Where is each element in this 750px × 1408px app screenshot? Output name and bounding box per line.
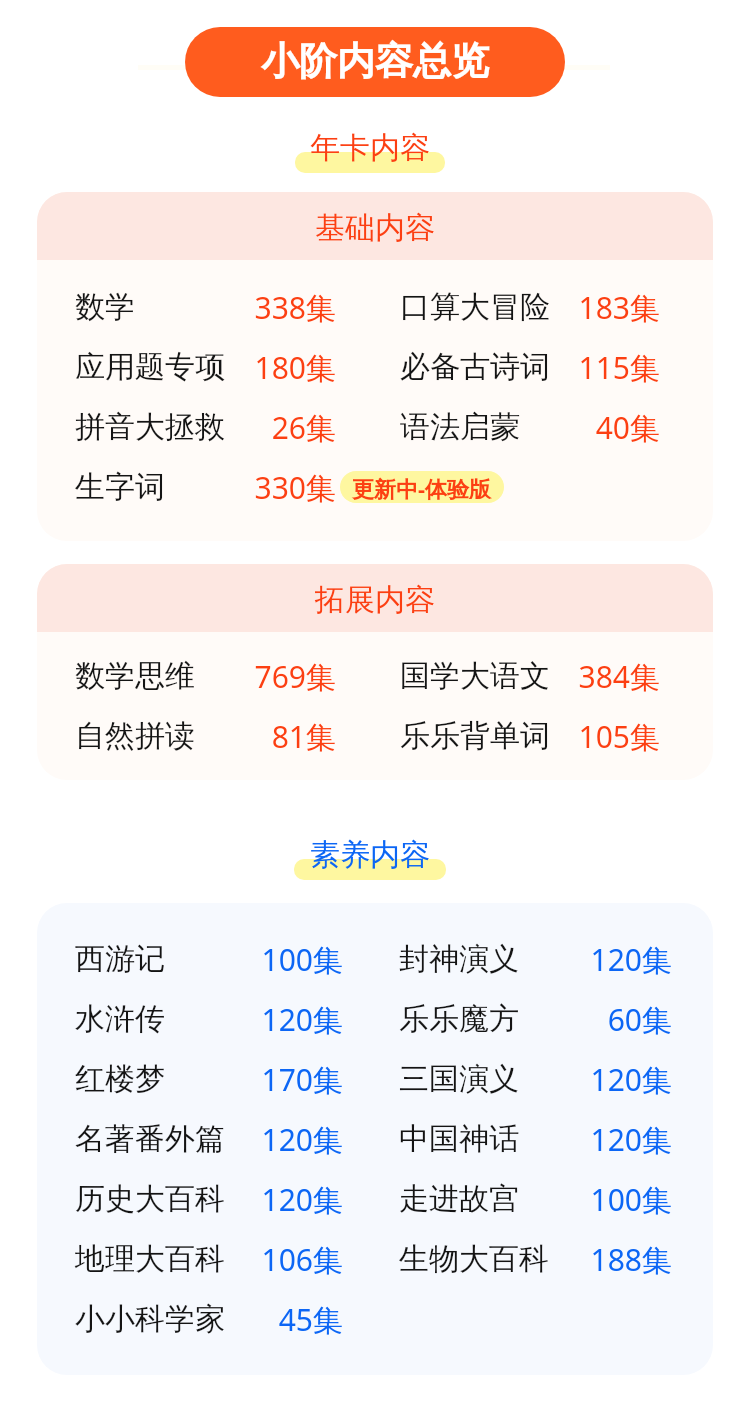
staticText: 水浒传 (75, 1000, 253, 1038)
staticText: 自然拼读 (75, 717, 246, 755)
button[interactable]: 国学大语文 (400, 646, 660, 706)
button[interactable]: 乐乐背单词 (400, 706, 660, 766)
staticText: 红楼梦 (75, 1060, 253, 1098)
button[interactable]: 小阶内容总览 (185, 27, 565, 97)
staticText: 封神演义 (399, 940, 582, 978)
staticText: 106集 (253, 1239, 343, 1280)
button[interactable]: 小小科学家 (75, 1289, 343, 1349)
button[interactable]: 地理大百科 (75, 1229, 343, 1289)
staticText: 330集 (246, 467, 336, 508)
staticText: 183集 (570, 287, 660, 328)
button[interactable]: 封神演义 (399, 929, 672, 989)
staticText: 338集 (246, 287, 336, 328)
staticText: 地理大百科 (75, 1240, 253, 1278)
staticText: 100集 (253, 939, 343, 980)
staticText: 40集 (570, 407, 660, 448)
button[interactable]: 水浒传 (75, 989, 343, 1049)
staticText: 26集 (246, 407, 336, 448)
button[interactable]: 年卡内容 (310, 129, 430, 167)
button[interactable]: 生字词 (75, 457, 504, 517)
staticText: 国学大语文 (400, 657, 570, 695)
staticText: 生字词 (75, 468, 246, 506)
staticText: 生物大百科 (399, 1240, 582, 1278)
staticText: 语法启蒙 (400, 408, 570, 446)
staticText: 中国神话 (399, 1120, 582, 1158)
button[interactable]: 乐乐魔方 (399, 989, 672, 1049)
staticText: 数学思维 (75, 657, 246, 695)
staticText: 180集 (246, 347, 336, 388)
staticText: 384集 (570, 656, 660, 697)
staticText: 口算大冒险 (400, 288, 570, 326)
staticText: 名著番外篇 (75, 1120, 253, 1158)
staticText: 81集 (246, 716, 336, 757)
button[interactable]: 数学 (75, 277, 336, 337)
staticText: 120集 (582, 1119, 672, 1160)
staticText: 素养内容 (310, 836, 430, 874)
button[interactable]: 拼音大拯救 (75, 397, 336, 457)
button[interactable]: 走进故宫 (399, 1169, 672, 1229)
staticText: 应用题专项 (75, 348, 246, 386)
button[interactable]: 口算大冒险 (400, 277, 660, 337)
button[interactable]: 中国神话 (399, 1109, 672, 1169)
staticText: 188集 (582, 1239, 672, 1280)
staticText: 乐乐背单词 (400, 717, 570, 755)
button[interactable]: 历史大百科 (75, 1169, 343, 1229)
staticText: 年卡内容 (310, 129, 430, 167)
staticText: 120集 (253, 1179, 343, 1220)
staticText: 拓展内容 (315, 581, 435, 619)
staticText: 45集 (253, 1299, 343, 1340)
button[interactable]: 自然拼读 (75, 706, 336, 766)
staticText: 小小科学家 (75, 1300, 253, 1338)
staticText: 拼音大拯救 (75, 408, 246, 446)
button[interactable]: 应用题专项 (75, 337, 336, 397)
staticText: 更新中-体验版 (352, 473, 492, 503)
button[interactable]: 数学思维 (75, 646, 336, 706)
button[interactable]: 生物大百科 (399, 1229, 672, 1289)
staticText: 历史大百科 (75, 1180, 253, 1218)
staticText: 走进故宫 (399, 1180, 582, 1218)
button[interactable]: 西游记 (75, 929, 343, 989)
staticText: 西游记 (75, 940, 253, 978)
staticText: 120集 (582, 1059, 672, 1100)
staticText: 120集 (582, 939, 672, 980)
button[interactable]: 素养内容 (310, 836, 430, 874)
staticText: 769集 (246, 656, 336, 697)
staticText: 基础内容 (315, 209, 435, 247)
staticText: 100集 (582, 1179, 672, 1220)
button[interactable]: 名著番外篇 (75, 1109, 343, 1169)
button[interactable]: 红楼梦 (75, 1049, 343, 1109)
staticText: 三国演义 (399, 1060, 582, 1098)
staticText: 数学 (75, 288, 246, 326)
staticText: 105集 (570, 716, 660, 757)
staticText: 120集 (253, 999, 343, 1040)
staticText: 乐乐魔方 (399, 1000, 582, 1038)
staticText: 170集 (253, 1059, 343, 1100)
button[interactable]: 三国演义 (399, 1049, 672, 1109)
staticText: 60集 (582, 999, 672, 1040)
staticText: 必备古诗词 (400, 348, 570, 386)
staticText: 120集 (253, 1119, 343, 1160)
staticText: 115集 (570, 347, 660, 388)
button[interactable]: 必备古诗词 (400, 337, 660, 397)
button[interactable]: 语法启蒙 (400, 397, 660, 457)
staticText: 小阶内容总览 (261, 37, 489, 85)
